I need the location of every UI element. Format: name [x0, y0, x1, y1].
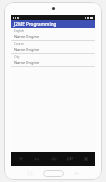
button[interactable]: Home [47, 152, 60, 166]
staticText: City [14, 55, 20, 59]
staticText: Name Engine [14, 60, 40, 65]
button[interactable]: Recents [63, 152, 76, 166]
button[interactable]: Home [43, 170, 64, 177]
button[interactable]: English [11, 28, 95, 40]
staticText: English [14, 29, 25, 33]
button[interactable]: Screenshot [79, 152, 92, 166]
staticText: Name Engine [14, 34, 40, 39]
button[interactable]: Back [30, 152, 43, 166]
button[interactable]: J2ME Programming [11, 20, 95, 28]
button[interactable]: Course [11, 41, 95, 53]
staticText: Course [14, 42, 24, 46]
staticText: J2ME Programming [14, 21, 57, 27]
button[interactable]: City [11, 54, 95, 66]
button[interactable]: Back [64, 172, 90, 175]
staticText: Name Engine [14, 47, 40, 52]
button[interactable]: Menu [14, 152, 27, 166]
